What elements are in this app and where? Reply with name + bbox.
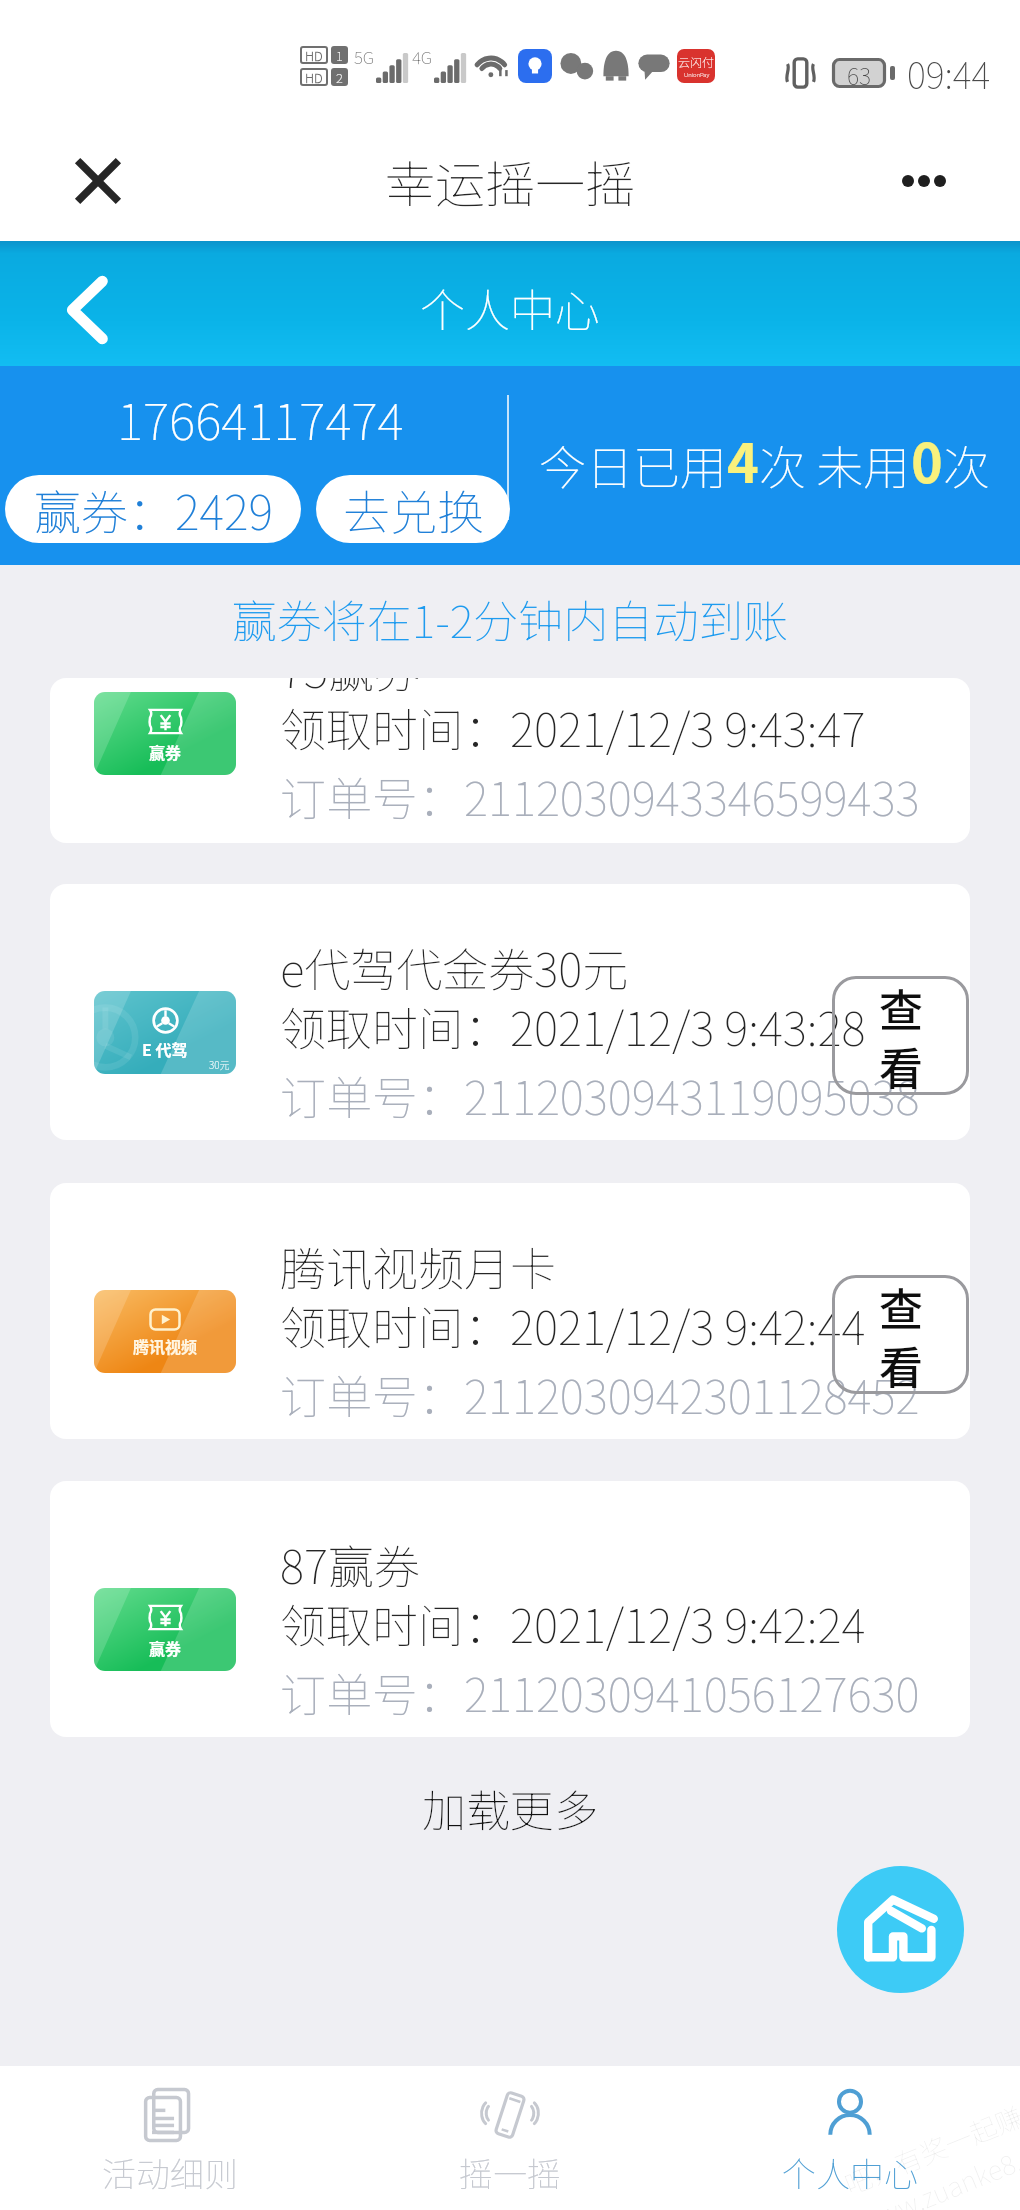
staticText: HD bbox=[305, 68, 323, 86]
staticText: 摇一摇 bbox=[459, 2148, 561, 2197]
button[interactable]: 赢券 bbox=[50, 1481, 970, 1737]
staticText: 查 看 bbox=[879, 976, 923, 1095]
staticText: 17664117474 bbox=[117, 382, 404, 454]
staticText: 75赢券 bbox=[280, 678, 420, 702]
staticText: 0 bbox=[911, 420, 943, 498]
staticText: UnionPay bbox=[684, 70, 710, 79]
staticText: 云闪付 bbox=[678, 53, 715, 70]
staticText: 4G bbox=[412, 44, 433, 69]
staticText: 赢券 bbox=[149, 740, 182, 763]
staticText: 订单号：2112030943119095038 bbox=[280, 1062, 920, 1129]
button[interactable]: Home bbox=[837, 1866, 964, 1993]
button[interactable]: E 代驾 bbox=[50, 884, 970, 1140]
staticText: e代驾代金券30元 bbox=[280, 934, 629, 1001]
staticText: 领取时间：2021/12/3 9:42:24 bbox=[280, 1590, 866, 1657]
staticText: www.zuanke8.com bbox=[853, 2122, 1020, 2210]
staticText: 腾讯视频月卡 bbox=[280, 1233, 556, 1300]
staticText: 09:44 bbox=[907, 47, 991, 99]
button[interactable]: 查 看 bbox=[832, 1275, 969, 1394]
button[interactable]: 查 看 bbox=[832, 976, 969, 1095]
staticText: 次 bbox=[943, 430, 990, 498]
staticText: 次 未用 bbox=[759, 430, 911, 498]
staticText: 查 看 bbox=[879, 1275, 923, 1394]
staticText: 2 bbox=[336, 68, 343, 86]
staticText: 87赢券 bbox=[280, 1531, 420, 1598]
button[interactable]: 加载更多 bbox=[0, 1776, 1020, 1840]
staticText: 个人中心 bbox=[782, 2148, 918, 2197]
staticText: 赢券：2429 bbox=[34, 475, 273, 543]
button[interactable]: 赢券 bbox=[50, 678, 970, 843]
staticText: 个人中心 bbox=[420, 275, 601, 340]
button[interactable]: 活动细则 bbox=[0, 2066, 340, 2210]
staticText: 活动细则 bbox=[102, 2148, 238, 2197]
staticText: 4 bbox=[727, 420, 759, 498]
staticText: 吧，有奖一起赚！ bbox=[838, 2086, 1020, 2203]
button[interactable]: 去兑换 bbox=[316, 475, 510, 543]
staticText: 领取时间：2021/12/3 9:43:28 bbox=[280, 993, 866, 1060]
staticText: 幸运摇一摇 bbox=[385, 145, 635, 217]
staticText: 赢券 bbox=[149, 1636, 182, 1659]
staticText: 订单号：2112030941056127630 bbox=[280, 1659, 920, 1726]
staticText: 5G bbox=[354, 44, 375, 69]
button[interactable]: More options bbox=[891, 161, 957, 201]
staticText: 63 bbox=[847, 58, 871, 88]
button[interactable]: 个人中心 bbox=[680, 2066, 1020, 2210]
staticText: 领取时间：2021/12/3 9:43:47 bbox=[280, 694, 866, 761]
staticText: 领取时间：2021/12/3 9:42:44 bbox=[280, 1292, 866, 1359]
staticText: 赢券将在1-2分钟内自动到账 bbox=[0, 586, 1020, 651]
button[interactable]: Close bbox=[70, 153, 126, 209]
button[interactable]: 摇一摇 bbox=[340, 2066, 680, 2210]
staticText: 今日已用 bbox=[539, 430, 727, 498]
button[interactable]: Back bbox=[52, 270, 120, 350]
staticText: 去兑换 bbox=[343, 475, 484, 543]
staticText: 30元 bbox=[209, 1057, 230, 1071]
button[interactable]: 腾讯视频 bbox=[50, 1183, 970, 1439]
staticText: 订单号：2112030943346599433 bbox=[280, 763, 920, 830]
staticText: 订单号：2112030942301128452 bbox=[280, 1361, 920, 1428]
button[interactable]: 赢券：2429 bbox=[5, 475, 301, 543]
staticText: 1 bbox=[336, 46, 343, 64]
staticText: E 代驾 bbox=[142, 1037, 188, 1060]
staticText: HD bbox=[305, 46, 323, 64]
staticText: 腾讯视频 bbox=[133, 1334, 198, 1357]
